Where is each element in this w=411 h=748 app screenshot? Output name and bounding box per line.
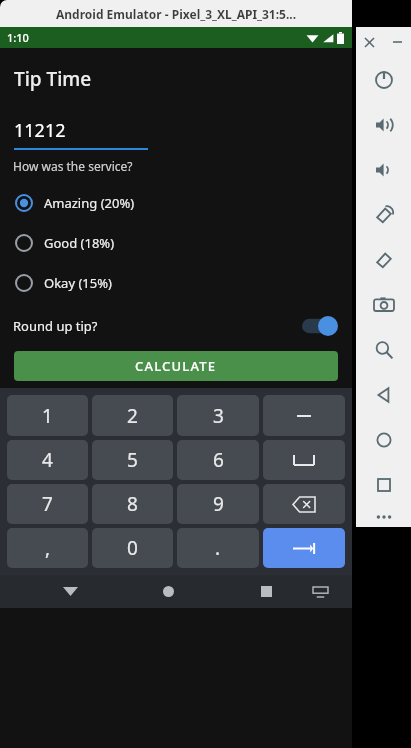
staticText: CALCULATE — [135, 357, 217, 375]
button[interactable]: Rotate right — [356, 237, 411, 282]
button[interactable]: 6 — [177, 440, 259, 480]
staticText: 1 — [42, 403, 53, 429]
button[interactable]: Home — [356, 417, 411, 462]
button[interactable]: Good (18%) — [0, 223, 352, 263]
staticText: 5 — [127, 447, 138, 473]
staticText: 11212 — [14, 118, 66, 143]
staticText: 1:10 — [7, 30, 29, 45]
staticText: How was the service? — [13, 158, 133, 174]
button[interactable]: Back — [356, 372, 411, 417]
button[interactable]: Keyboard — [305, 577, 335, 607]
button[interactable]: Close — [356, 27, 383, 57]
button[interactable]: . — [177, 528, 259, 568]
button[interactable]: 11212 — [14, 118, 148, 150]
button[interactable]: Space — [263, 440, 345, 480]
staticText: 3 — [213, 403, 224, 429]
button[interactable]: , — [7, 528, 88, 568]
button[interactable]: 2 — [92, 395, 173, 436]
button[interactable]: Power — [356, 57, 411, 102]
staticText: 4 — [42, 447, 53, 473]
button[interactable]: 7 — [7, 484, 88, 524]
button[interactable]: Rotate left — [356, 192, 411, 237]
button[interactable]: Overview — [356, 462, 411, 507]
button[interactable]: Okay (15%) — [0, 263, 352, 303]
staticText: Good (18%) — [44, 234, 115, 252]
button[interactable]: Volume down — [356, 147, 411, 192]
button[interactable]: Home — [151, 575, 185, 608]
button[interactable]: Next — [263, 528, 345, 568]
staticText: . — [215, 535, 221, 561]
button[interactable]: 0 — [92, 528, 173, 568]
button[interactable]: Amazing (20%) — [0, 183, 352, 223]
staticText: 6 — [213, 447, 224, 473]
button[interactable]: 9 — [177, 484, 259, 524]
button[interactable]: More — [356, 507, 411, 527]
staticText: Tip Time — [14, 66, 92, 92]
button[interactable]: 4 — [7, 440, 88, 480]
button[interactable]: 8 — [92, 484, 173, 524]
button[interactable]: Zoom — [356, 327, 411, 372]
button[interactable]: Round up tip? — [0, 309, 352, 343]
staticText: 7 — [42, 491, 53, 517]
button[interactable]: Volume up — [356, 102, 411, 147]
staticText: 8 — [127, 491, 138, 517]
button[interactable]: Backspace — [263, 484, 345, 524]
button[interactable]: 3 — [177, 395, 259, 436]
staticText: Round up tip? — [13, 317, 98, 335]
staticText: 9 — [213, 491, 224, 517]
button[interactable]: Minimize — [383, 27, 411, 57]
button[interactable]: Dash — [263, 395, 345, 436]
staticText: Amazing (20%) — [44, 194, 135, 212]
button[interactable]: Screenshot — [356, 282, 411, 327]
staticText: , — [45, 535, 51, 561]
staticText: Android Emulator - Pixel_3_XL_API_31:5..… — [56, 6, 297, 22]
staticText: Okay (15%) — [44, 274, 112, 292]
button[interactable]: Recents — [249, 575, 283, 608]
button[interactable]: 5 — [92, 440, 173, 480]
staticText: 0 — [127, 535, 138, 561]
button[interactable]: 1 — [7, 395, 88, 436]
staticText: 2 — [127, 403, 138, 429]
button[interactable]: CALCULATE — [14, 351, 338, 381]
button[interactable]: Back — [53, 575, 87, 608]
